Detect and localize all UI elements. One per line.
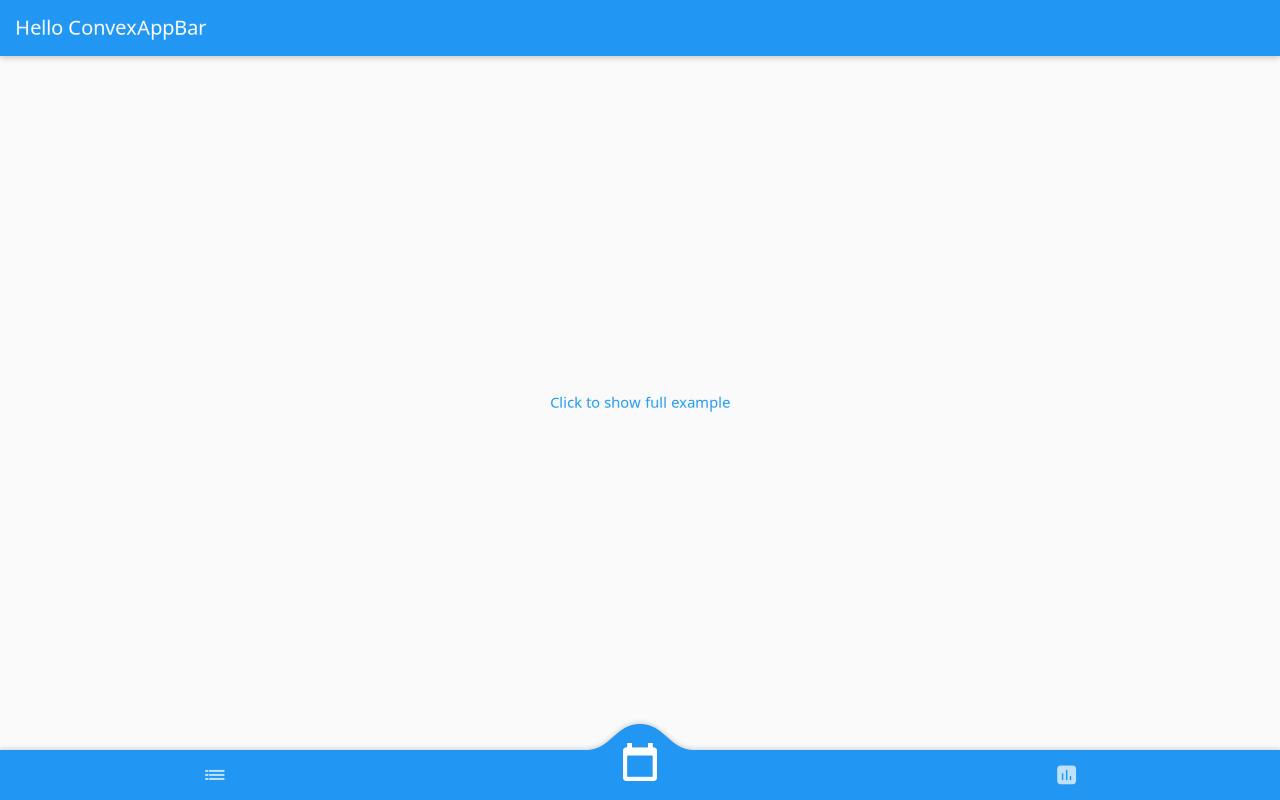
button[interactable]: Click to show full example: [544, 386, 736, 418]
staticText: Hello ConvexAppBar: [15, 14, 206, 40]
button[interactable]: List: [0, 750, 427, 800]
button[interactable]: Calendar: [427, 750, 853, 800]
staticText: Click to show full example: [550, 392, 730, 412]
button[interactable]: Chart: [853, 750, 1280, 800]
